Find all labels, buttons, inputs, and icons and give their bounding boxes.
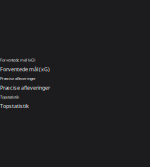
staticText: Præcise afleveringer <box>0 76 36 81</box>
staticText: Forventede mål (xG) <box>0 66 50 73</box>
staticText: Topstatistik <box>0 94 19 99</box>
staticText: Topstatistik <box>0 102 29 110</box>
staticText: Præcise afleveringer <box>0 84 50 91</box>
staticText: Forventede mål (xG) <box>0 57 35 63</box>
